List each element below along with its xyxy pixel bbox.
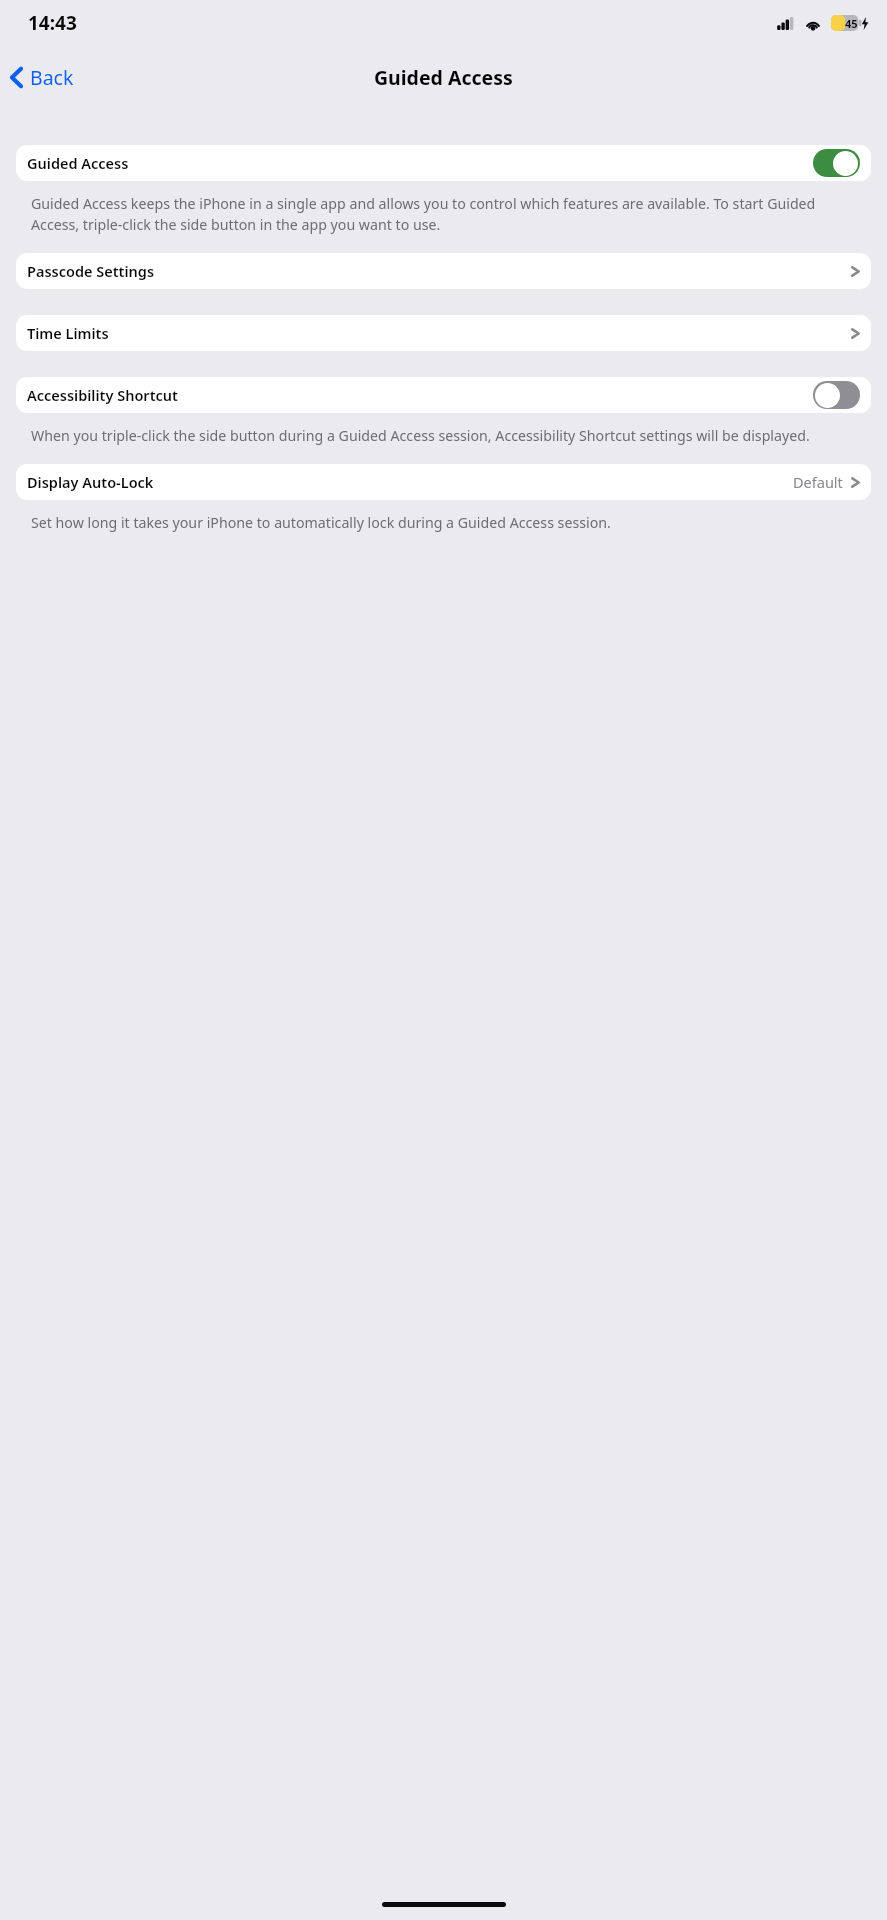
staticText: Guided Access keeps the iPhone in a sing… xyxy=(31,194,845,234)
staticText: Back xyxy=(30,64,74,91)
staticText: Set how long it takes your iPhone to aut… xyxy=(31,513,845,532)
staticText: Default xyxy=(793,472,843,492)
staticText: Guided Access xyxy=(374,64,513,91)
staticText: 14:43 xyxy=(28,10,77,36)
button[interactable]: Toggle off xyxy=(813,381,860,409)
button[interactable]: Time Limits xyxy=(16,315,871,351)
staticText: Time Limits xyxy=(27,323,109,343)
staticText: Accessibility Shortcut xyxy=(27,385,178,405)
staticText: Display Auto-Lock xyxy=(27,472,154,492)
button[interactable]: Passcode Settings xyxy=(16,253,871,289)
staticText: When you triple-click the side button du… xyxy=(31,426,845,445)
button[interactable]: Back xyxy=(0,58,88,97)
staticText: Guided Access xyxy=(27,153,129,173)
staticText: 45 xyxy=(845,16,858,31)
staticText: Passcode Settings xyxy=(27,261,155,281)
button[interactable]: Toggle on xyxy=(813,149,860,177)
button[interactable]: Display Auto-Lock xyxy=(16,464,871,500)
